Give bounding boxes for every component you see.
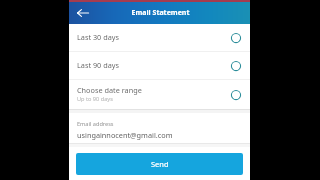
button[interactable]: Choose date range xyxy=(69,80,250,109)
staticText: Email Statement xyxy=(93,8,228,18)
staticText: Email address xyxy=(77,120,114,128)
staticText: Up to 90 days xyxy=(77,95,113,103)
staticText: usingainnocent@gmail.com xyxy=(77,130,173,140)
staticText: Send xyxy=(151,159,169,169)
staticText: Choose date range xyxy=(77,85,142,95)
button[interactable]: Back xyxy=(73,3,93,23)
button[interactable]: Last 90 days xyxy=(69,52,250,79)
button[interactable]: Send xyxy=(76,153,243,175)
staticText: Last 90 days xyxy=(77,60,119,70)
button[interactable]: Email address xyxy=(69,113,250,143)
staticText: Last 30 days xyxy=(77,32,119,42)
button[interactable]: Last 30 days xyxy=(69,24,250,51)
